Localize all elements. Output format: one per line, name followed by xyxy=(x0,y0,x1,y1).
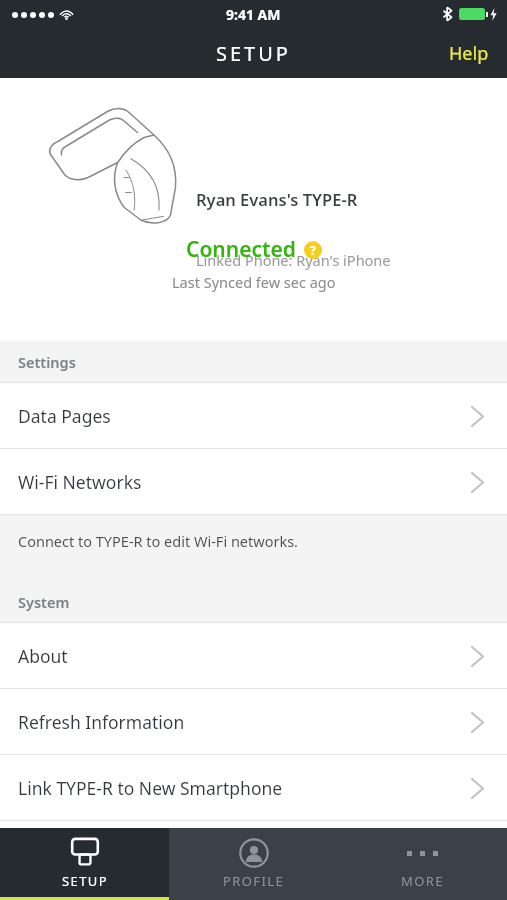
button[interactable]: PROFILE xyxy=(169,828,338,900)
staticText: About xyxy=(18,644,68,668)
button[interactable]: Connection help xyxy=(304,241,322,259)
staticText: Connect to TYPE-R to edit Wi-Fi networks… xyxy=(18,531,298,551)
staticText: Help xyxy=(449,41,489,66)
staticText: Connected xyxy=(186,235,296,264)
staticText: SETUP xyxy=(62,872,108,890)
staticText: Ryan Evans's TYPE-R xyxy=(196,188,358,210)
staticText: Wi-Fi Networks xyxy=(18,470,142,494)
staticText: MORE xyxy=(401,872,444,890)
staticText: Linked Phone: Ryan's iPhone xyxy=(196,250,391,270)
staticText: 9:41 AM xyxy=(226,5,281,24)
button[interactable]: Help xyxy=(431,31,507,76)
button[interactable]: About xyxy=(0,623,507,689)
staticText: ? xyxy=(310,242,316,258)
button[interactable]: Data Pages xyxy=(0,383,507,449)
staticText: Refresh Information xyxy=(18,710,185,734)
staticText: Last Synced few sec ago xyxy=(172,272,336,292)
staticText: Data Pages xyxy=(18,404,111,428)
button[interactable]: SETUP xyxy=(0,828,169,900)
staticText: PROFILE xyxy=(223,872,285,890)
button[interactable]: Wi-Fi Networks xyxy=(0,449,507,515)
button[interactable]: MORE xyxy=(338,828,507,900)
staticText: Link TYPE-R to New Smartphone xyxy=(18,776,283,800)
button[interactable]: Refresh Information xyxy=(0,689,507,755)
button[interactable]: Link TYPE-R to New Smartphone xyxy=(0,755,507,821)
staticText: Settings xyxy=(18,352,76,372)
staticText: SETUP xyxy=(216,40,291,67)
staticText: System xyxy=(18,592,70,612)
